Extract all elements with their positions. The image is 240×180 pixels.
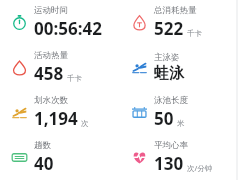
other: Laps bbox=[11, 149, 28, 166]
other: Duration bbox=[11, 14, 28, 31]
other: Average heart rate bbox=[131, 149, 148, 166]
staticText: 千卡 bbox=[67, 74, 82, 83]
staticText: 总消耗热量 bbox=[154, 5, 197, 16]
staticText: 1,194 bbox=[34, 107, 78, 130]
staticText: 50 bbox=[154, 107, 174, 130]
staticText: 130 bbox=[154, 152, 184, 175]
staticText: 趟数 bbox=[34, 140, 51, 151]
staticText: 522 bbox=[154, 17, 184, 40]
other: Total calories bbox=[131, 14, 148, 31]
staticText: 活动热量 bbox=[34, 50, 68, 61]
staticText: 划水次数 bbox=[34, 95, 68, 106]
button[interactable]: Laps bbox=[0, 135, 120, 180]
staticText: 40 bbox=[34, 152, 54, 175]
button[interactable]: Total calories bbox=[120, 0, 240, 45]
staticText: 主泳姿 bbox=[154, 52, 180, 63]
staticText: 次/分钟 bbox=[187, 163, 213, 173]
button[interactable]: Main stroke bbox=[120, 45, 240, 90]
button[interactable]: Pool length bbox=[120, 90, 240, 135]
other: Main stroke bbox=[131, 59, 148, 76]
button[interactable]: Active calories bbox=[0, 45, 120, 90]
staticText: 次 bbox=[81, 119, 89, 128]
staticText: 蛙泳 bbox=[154, 64, 184, 83]
staticText: 00:56:42 bbox=[34, 17, 102, 40]
other: Strokes bbox=[11, 104, 28, 121]
button[interactable]: Strokes bbox=[0, 90, 120, 135]
button[interactable]: Average heart rate bbox=[120, 135, 240, 180]
staticText: 米 bbox=[177, 119, 185, 128]
button[interactable]: Duration bbox=[0, 0, 120, 45]
staticText: 运动时间 bbox=[34, 5, 68, 16]
other: Pool length bbox=[131, 104, 148, 121]
staticText: 平均心率 bbox=[154, 140, 188, 151]
other: Active calories bbox=[11, 59, 28, 76]
staticText: 泳池长度 bbox=[154, 95, 188, 106]
staticText: 千卡 bbox=[187, 29, 202, 38]
staticText: 458 bbox=[34, 62, 64, 85]
